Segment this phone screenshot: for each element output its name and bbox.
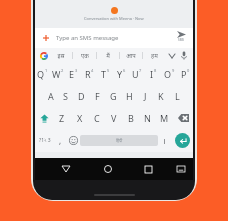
button[interactable]: Home <box>87 158 128 180</box>
button[interactable]: T <box>97 63 113 85</box>
staticText: Q <box>37 68 45 80</box>
staticText: इस <box>57 52 65 60</box>
button[interactable]: G <box>105 85 121 107</box>
staticText: Conversation with Meena · Now <box>84 16 144 21</box>
staticText: S <box>63 90 68 102</box>
staticText: 0 <box>187 68 190 73</box>
button[interactable]: I <box>145 63 161 85</box>
staticText: V <box>111 112 117 124</box>
staticText: Type an SMS message <box>56 34 119 42</box>
button[interactable]: J <box>137 85 153 107</box>
button[interactable]: N <box>139 107 156 129</box>
button[interactable]: Z <box>53 107 71 129</box>
button[interactable]: Send SMS <box>174 28 188 48</box>
button[interactable]: ?1২ 3 <box>35 129 55 152</box>
staticText: K <box>158 90 164 102</box>
button[interactable]: , <box>55 129 66 152</box>
button[interactable]: R <box>81 63 97 85</box>
staticText: J <box>144 90 147 102</box>
button[interactable]: एक <box>73 48 96 63</box>
staticText: F <box>95 90 100 102</box>
staticText: E <box>69 68 75 80</box>
staticText: I <box>150 68 154 80</box>
staticText: D <box>78 90 85 102</box>
button[interactable]: P <box>177 63 193 85</box>
button[interactable]: W <box>50 63 65 85</box>
staticText: Y <box>117 68 123 80</box>
button[interactable]: E <box>65 63 81 85</box>
button[interactable]: H <box>121 85 137 107</box>
staticText: 8 <box>154 68 157 73</box>
button[interactable]: हम <box>143 48 165 63</box>
staticText: R <box>85 68 91 80</box>
button[interactable]: Recents <box>128 158 169 180</box>
button[interactable]: Voice input <box>178 48 190 63</box>
staticText: G <box>110 90 117 102</box>
staticText: X <box>77 112 83 124</box>
button[interactable]: A <box>43 85 58 107</box>
staticText: 2 <box>61 68 64 73</box>
button[interactable]: । <box>158 129 171 152</box>
staticText: 9 <box>172 68 175 73</box>
button[interactable]: Enter <box>171 129 193 152</box>
staticText: 6 <box>123 68 126 73</box>
staticText: मैं <box>106 52 110 60</box>
button[interactable]: मैं <box>97 48 119 63</box>
staticText: N <box>144 112 151 124</box>
button[interactable]: Add attachment <box>40 32 52 44</box>
staticText: 7 <box>139 68 142 73</box>
button[interactable]: Backspace <box>173 107 193 129</box>
button[interactable]: Space <box>80 135 158 146</box>
staticText: P <box>181 68 187 80</box>
button[interactable]: F <box>89 85 105 107</box>
staticText: Z <box>59 112 65 124</box>
staticText: A <box>48 90 54 102</box>
button[interactable]: B <box>122 107 139 129</box>
button[interactable]: V <box>105 107 122 129</box>
button[interactable]: Emoji <box>66 129 80 152</box>
staticText: T <box>101 68 107 80</box>
staticText: M <box>160 112 169 124</box>
staticText: 1 <box>45 68 48 73</box>
button[interactable]: Google <box>38 50 49 61</box>
button[interactable]: L <box>169 85 185 107</box>
staticText: एक <box>81 52 89 60</box>
staticText: SMS <box>178 38 185 42</box>
staticText: C <box>94 112 100 124</box>
staticText: ?1২ 3 <box>39 137 51 144</box>
button[interactable]: K <box>153 85 169 107</box>
button[interactable]: इस <box>49 48 72 63</box>
staticText: । <box>163 135 167 146</box>
button[interactable]: O <box>161 63 177 85</box>
button[interactable]: D <box>73 85 89 107</box>
staticText: L <box>175 90 180 102</box>
staticText: O <box>164 68 172 80</box>
button[interactable]: S <box>58 85 73 107</box>
button[interactable]: C <box>88 107 105 129</box>
staticText: B <box>128 112 134 124</box>
staticText: U <box>132 68 139 80</box>
button[interactable]: M <box>156 107 173 129</box>
button[interactable]: Q <box>35 63 50 85</box>
staticText: , <box>59 135 62 146</box>
staticText: 4 <box>91 68 94 73</box>
button[interactable]: Type an SMS message <box>56 28 174 48</box>
staticText: 3 <box>75 68 78 73</box>
button[interactable]: X <box>71 107 88 129</box>
staticText: W <box>52 68 61 80</box>
staticText: आप <box>126 52 136 60</box>
staticText: H <box>126 90 133 102</box>
button[interactable]: Shift <box>35 107 53 129</box>
staticText: हिंदी <box>116 138 123 143</box>
staticText: हम <box>151 52 158 60</box>
button[interactable]: आप <box>120 48 142 63</box>
staticText: 5 <box>107 68 110 73</box>
button[interactable]: Hide keyboard <box>45 158 87 180</box>
button[interactable]: Switch keyboard <box>169 158 193 180</box>
button[interactable]: U <box>129 63 145 85</box>
button[interactable]: More suggestions <box>165 48 178 63</box>
button[interactable]: Y <box>113 63 129 85</box>
